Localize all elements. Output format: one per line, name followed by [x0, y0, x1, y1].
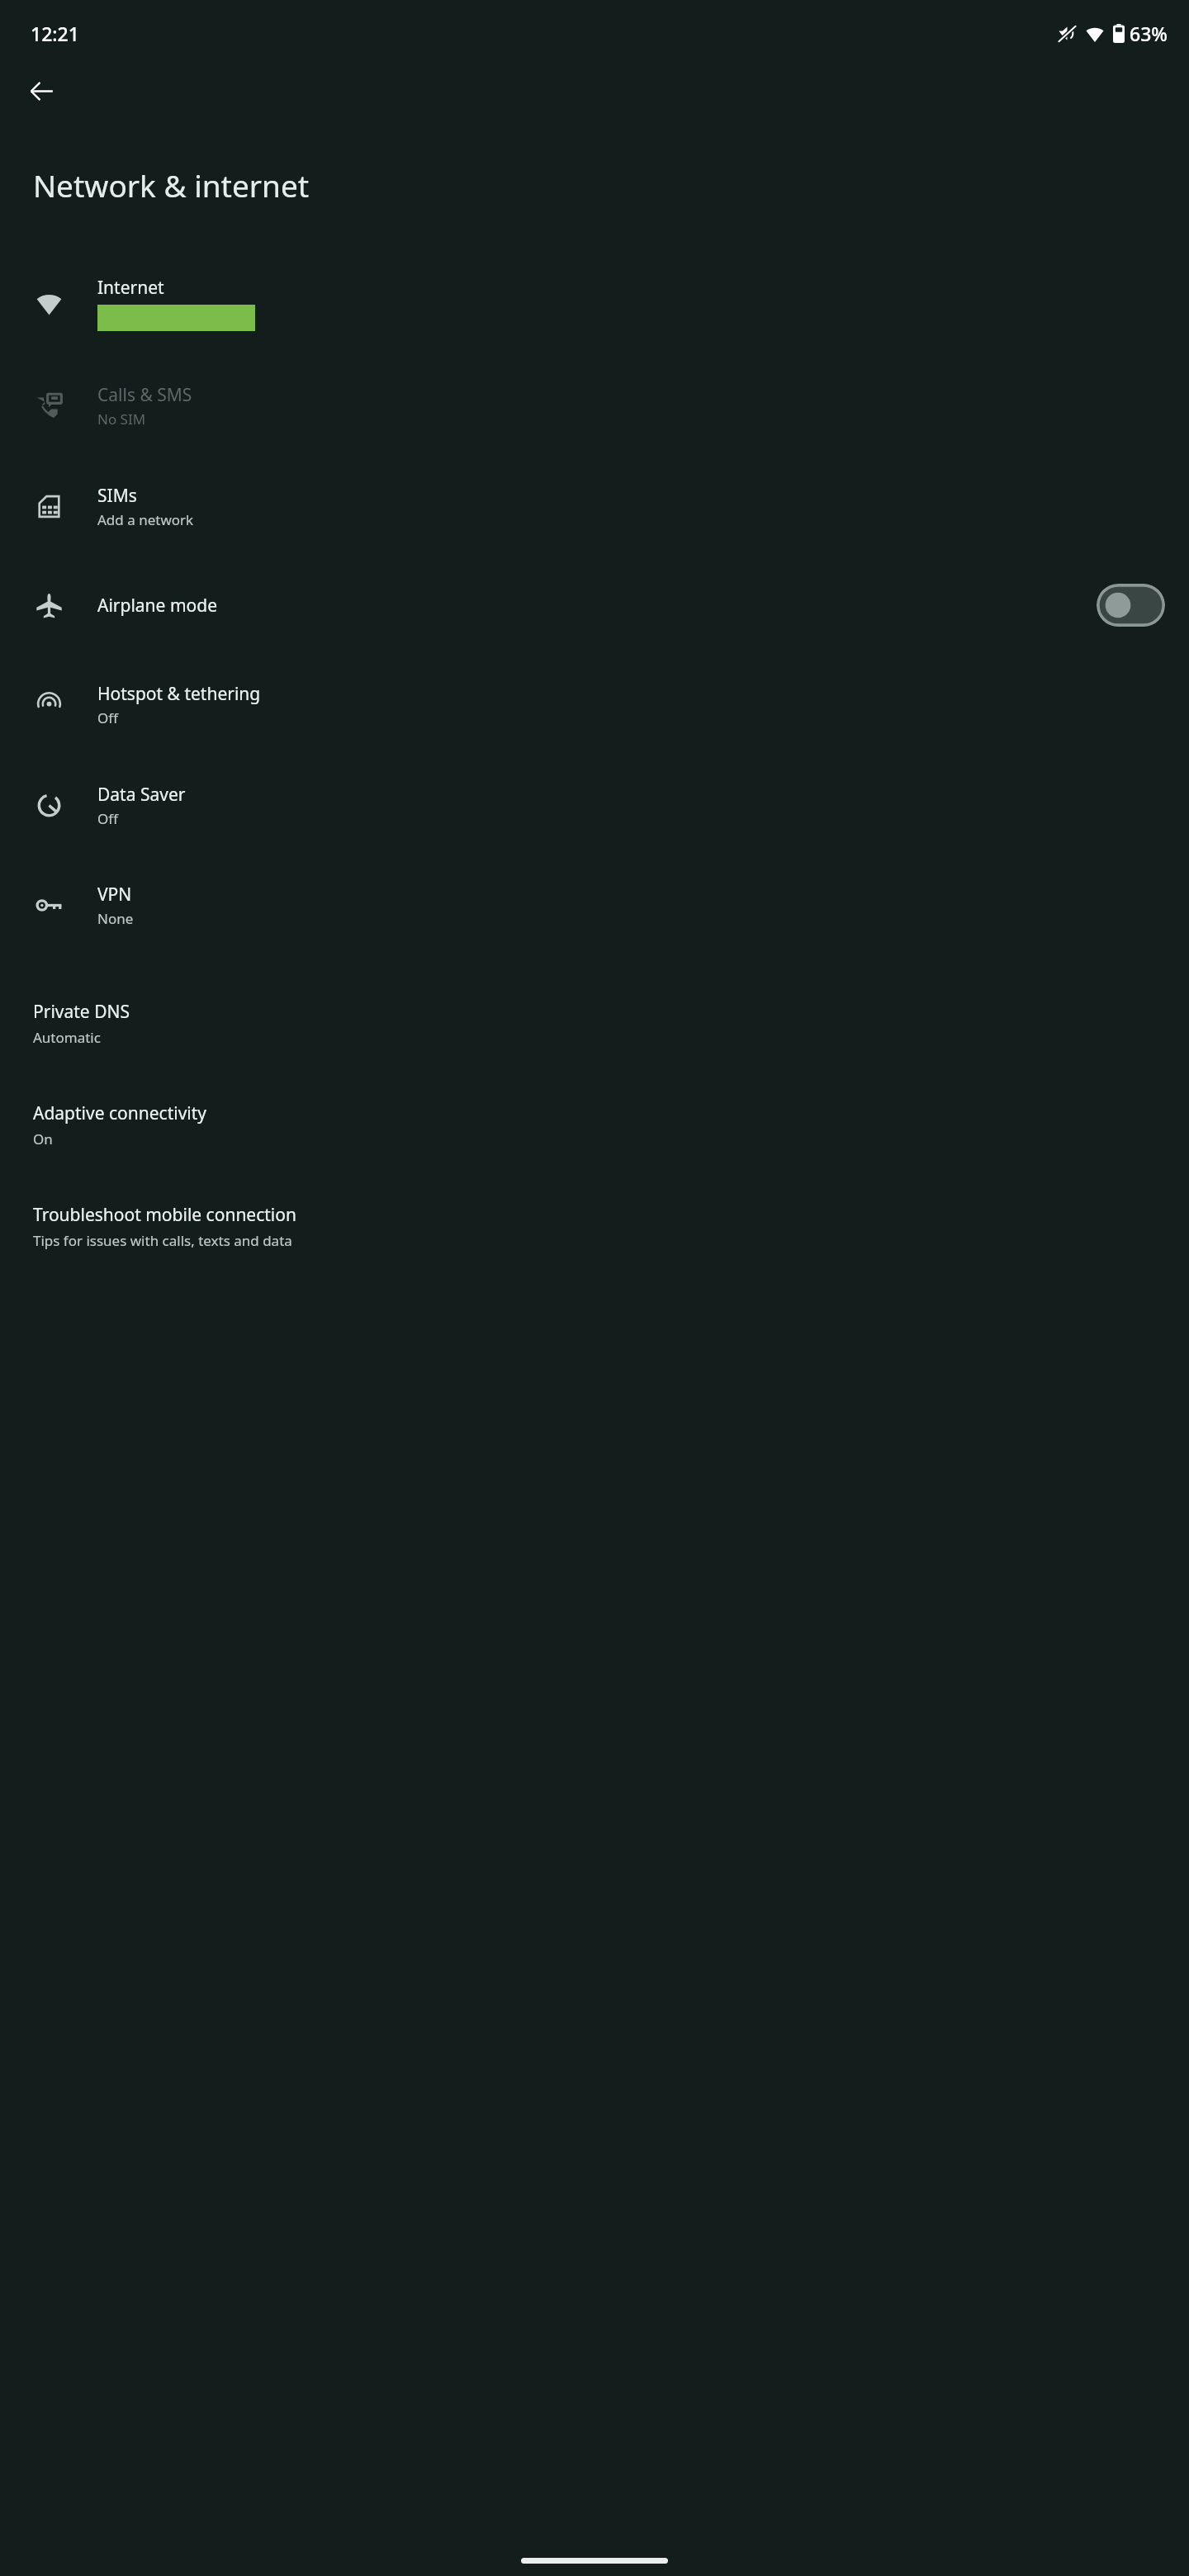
button[interactable]: Calls & SMS — [0, 355, 1189, 456]
staticText: Private DNS — [33, 1000, 130, 1024]
staticText: Airplane mode — [97, 594, 218, 618]
button[interactable]: Private DNS — [0, 973, 1189, 1074]
staticText: Automatic — [33, 1028, 101, 1047]
staticText: On — [33, 1129, 53, 1148]
button[interactable]: SIMs — [0, 456, 1189, 556]
staticText: 12:21 — [31, 21, 79, 46]
staticText: Add a network — [97, 510, 194, 529]
staticText: Adaptive connectivity — [33, 1101, 207, 1125]
button[interactable]: Data Saver — [0, 755, 1189, 855]
button[interactable]: Internet — [0, 252, 1189, 355]
staticText: None — [97, 909, 134, 928]
staticText: Calls & SMS — [97, 383, 192, 407]
button[interactable]: Back — [18, 68, 64, 114]
staticText: Data Saver — [97, 783, 186, 807]
button[interactable]: Hotspot & tethering — [0, 654, 1189, 755]
button[interactable]: Troubleshoot mobile connection — [0, 1176, 1189, 1277]
button[interactable]: Adaptive connectivity — [0, 1074, 1189, 1176]
staticText: No SIM — [97, 410, 146, 429]
staticText: 63% — [1130, 21, 1168, 46]
staticText: Off — [97, 809, 118, 828]
staticText: Tips for issues with calls, texts and da… — [33, 1231, 292, 1250]
button[interactable]: VPN — [0, 855, 1189, 954]
button[interactable]: Airplane mode — [0, 556, 1189, 654]
staticText: Off — [97, 708, 118, 727]
staticText: VPN — [97, 883, 132, 907]
staticText: Hotspot & tethering — [97, 682, 261, 706]
staticText: SIMs — [97, 484, 137, 508]
staticText: Internet — [97, 276, 164, 300]
button[interactable]: Airplane mode — [1097, 584, 1165, 627]
staticText: Troubleshoot mobile connection — [33, 1203, 296, 1227]
staticText: Network & internet — [33, 164, 310, 206]
